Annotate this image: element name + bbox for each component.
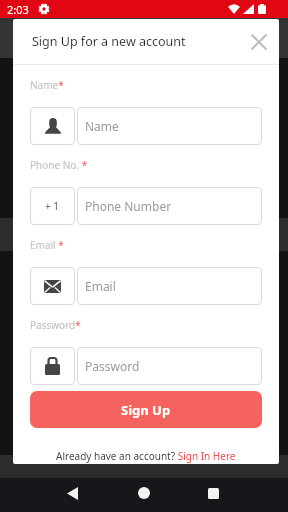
button[interactable]: Name — [77, 107, 262, 145]
staticText: Phone Number — [85, 198, 172, 214]
staticText: Name* — [30, 78, 64, 92]
staticText: Email * — [30, 238, 64, 252]
button[interactable]: Phone Number — [77, 187, 262, 225]
staticText: + 1 — [45, 199, 60, 213]
staticText: Phone No. * — [30, 158, 88, 172]
button[interactable] — [58, 479, 86, 507]
button[interactable]: Already have an account? Sign In Here — [56, 449, 236, 463]
button[interactable] — [30, 107, 75, 145]
staticText: Sign Up for a new account — [32, 33, 186, 50]
staticText: Email — [85, 278, 116, 294]
button[interactable]: Sign Up — [30, 391, 262, 428]
button[interactable] — [130, 479, 158, 507]
staticText: Password — [85, 358, 140, 374]
button[interactable]: Email — [77, 267, 262, 305]
button[interactable] — [30, 347, 75, 385]
button[interactable] — [30, 267, 75, 305]
staticText: 2:03 — [7, 2, 29, 17]
button[interactable] — [251, 34, 267, 50]
staticText: Password* — [30, 318, 81, 332]
staticText: Name — [85, 118, 119, 134]
button[interactable] — [199, 479, 227, 507]
button[interactable]: + 1 — [30, 187, 75, 225]
staticText: Sign Up — [121, 401, 171, 419]
button[interactable]: Password — [77, 347, 262, 385]
